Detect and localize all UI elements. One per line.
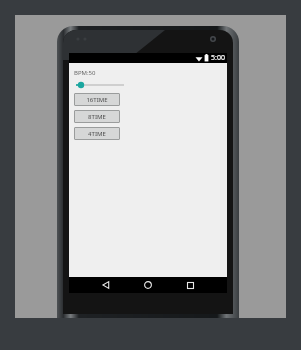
button[interactable]: 16TIME: [74, 93, 120, 106]
staticText: 5:00: [211, 53, 225, 63]
button[interactable]: Recent apps: [177, 277, 203, 293]
button[interactable]: 4TIME: [74, 127, 120, 140]
button[interactable]: BPM slider: [74, 80, 126, 90]
staticText: 8TIME: [88, 113, 106, 121]
button[interactable]: 8TIME: [74, 110, 120, 123]
staticText: BPM:50: [74, 69, 96, 77]
staticText: 16TIME: [86, 96, 108, 104]
button[interactable]: Home: [135, 277, 161, 293]
button[interactable]: Back: [93, 277, 119, 293]
staticText: 4TIME: [88, 130, 106, 138]
